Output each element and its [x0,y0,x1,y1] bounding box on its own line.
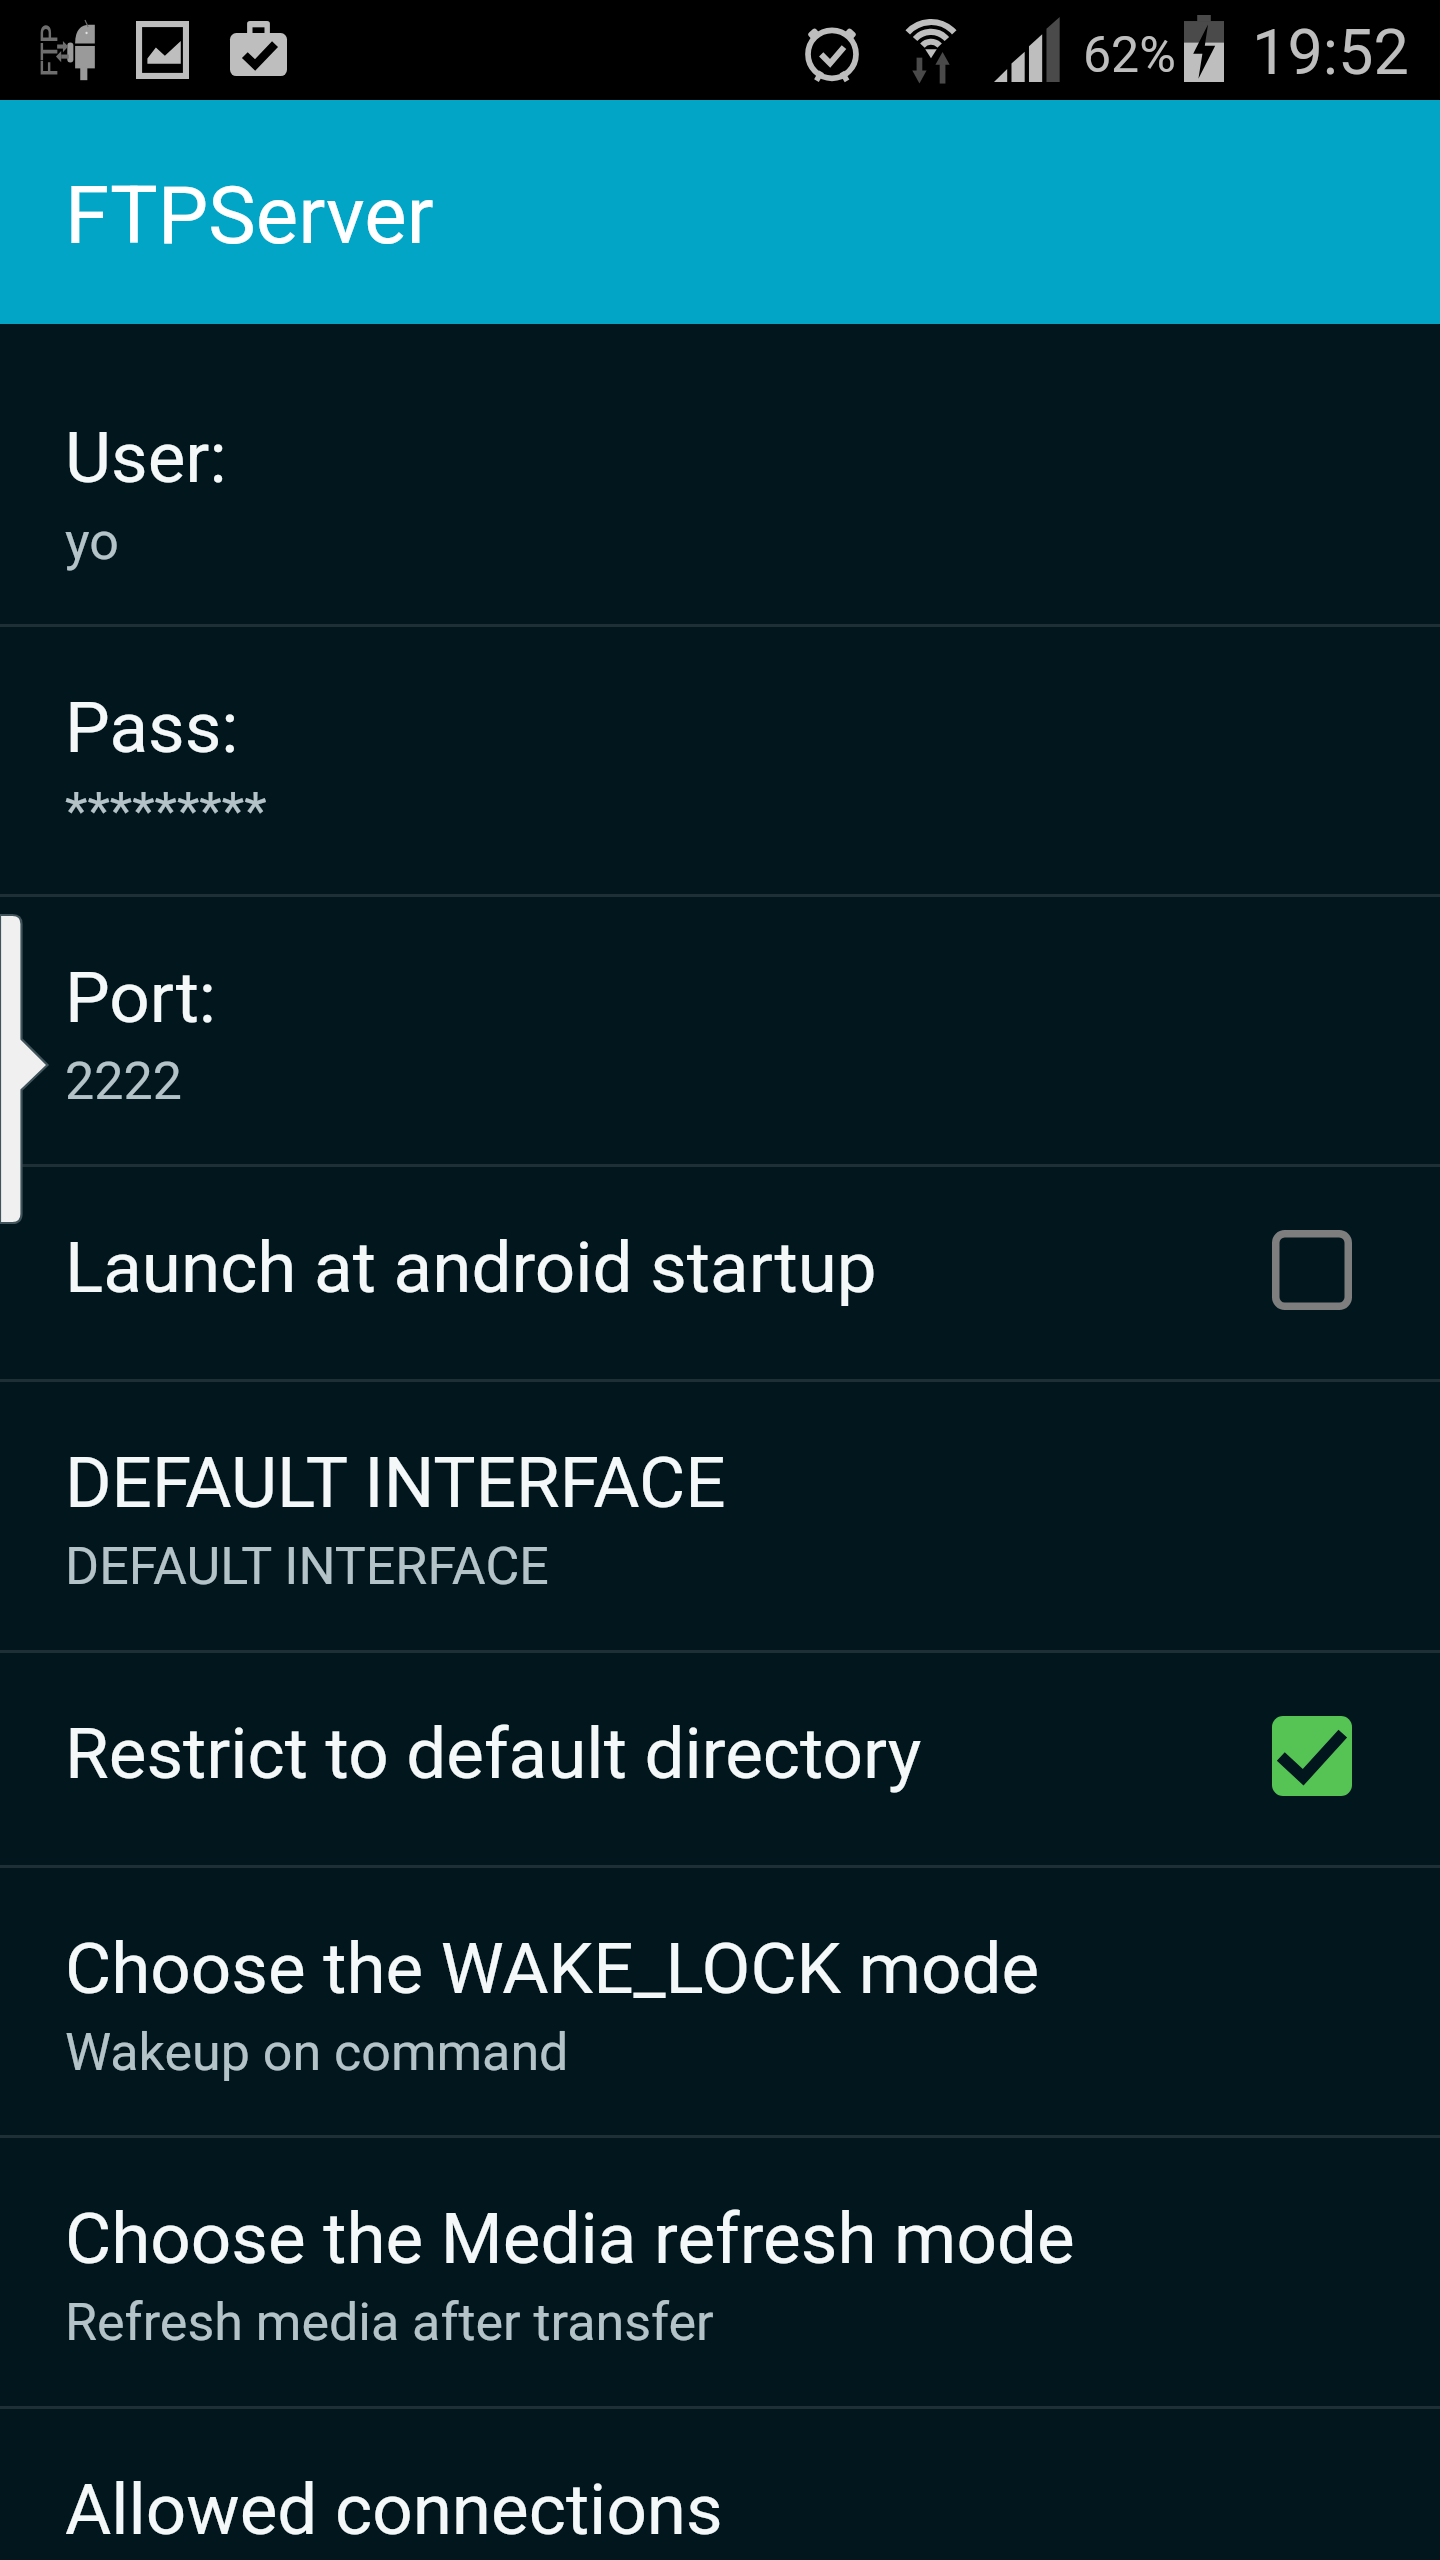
button[interactable]: Choose the WAKE_LOCK mode [0,1868,1440,2135]
other: Alarm set [802,18,862,84]
staticText: Launch at android startup [65,1226,877,1309]
staticText: Restrict to default directory [65,1712,922,1795]
staticText: Pass: [65,686,239,769]
staticText: 2222 [65,1051,182,1112]
button[interactable]: Launch at android startup [0,1167,1440,1379]
button[interactable]: Allowed connections [0,2409,1440,2560]
button[interactable]: FTPServer [0,100,1440,324]
button[interactable]: Pass: [0,627,1440,894]
staticText: DEFAULT INTERFACE [65,1441,726,1524]
button[interactable]: Choose the Media refresh mode [0,2138,1440,2406]
staticText: Refresh media after transfer [65,2292,714,2353]
other: Work profile [230,21,287,76]
staticText: 62% [1083,26,1176,85]
other: Screenshot captured [136,21,189,79]
button[interactable]: DEFAULT INTERFACE [0,1382,1440,1650]
staticText: Choose the WAKE_LOCK mode [65,1927,1040,2010]
button[interactable]: Restrict to default directory [0,1653,1440,1865]
other: Fast scroll [0,915,48,1223]
button[interactable]: User: [0,357,1440,624]
staticText: User: [65,416,227,499]
staticText: yo [65,511,119,572]
other: FTP server running [38,20,96,79]
staticText: Port: [65,956,217,1039]
other: Battery charging [1184,15,1224,82]
staticText: Allowed connections [65,2468,723,2551]
staticText: 19:52 [1252,16,1409,90]
staticText: Wakeup on command [65,2022,569,2083]
staticText: Choose the Media refresh mode [65,2197,1075,2280]
staticText: FTPServer [65,169,434,263]
button[interactable]: Port: [0,897,1440,1164]
other: Wi-Fi connected [897,13,965,85]
staticText: DEFAULT INTERFACE [65,1536,549,1597]
staticText: ********* [65,781,267,842]
other: Mobile signal [994,17,1060,82]
